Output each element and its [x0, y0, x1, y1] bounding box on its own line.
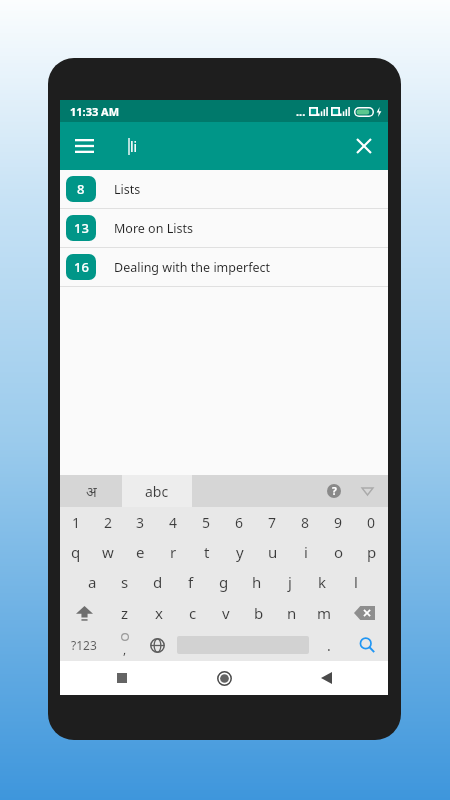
button[interactable]: l [339, 567, 372, 597]
button[interactable]: Shift [60, 597, 108, 629]
button[interactable]: Help [318, 475, 350, 507]
staticText: 11:33 AM [70, 104, 120, 119]
button[interactable]: 9 [322, 507, 355, 537]
staticText: 7 [268, 513, 277, 532]
staticText: k [318, 572, 327, 592]
button[interactable]: b [242, 597, 275, 629]
staticText: . [327, 636, 331, 655]
button[interactable]: t [190, 537, 223, 567]
button[interactable]: k [306, 567, 339, 597]
staticText: 3 [136, 513, 145, 532]
button[interactable]: Home [194, 661, 254, 695]
button[interactable]: q [60, 537, 92, 567]
button[interactable]: . [312, 629, 345, 661]
button[interactable]: Change language [141, 629, 174, 661]
button[interactable]: 5 [190, 507, 223, 537]
staticText: 9 [334, 513, 343, 532]
button[interactable]: x [142, 597, 176, 629]
button[interactable]: 0 [355, 507, 388, 537]
button[interactable]: v [209, 597, 242, 629]
staticText: li [130, 137, 138, 156]
staticText: s [121, 572, 129, 592]
button[interactable]: अ [60, 475, 122, 507]
button[interactable]: z [108, 597, 142, 629]
button[interactable]: 13 [60, 209, 388, 248]
staticText: z [121, 603, 129, 623]
button[interactable]: d [141, 567, 174, 597]
staticText: l [354, 572, 358, 592]
button[interactable]: w [92, 537, 124, 567]
button[interactable]: i [289, 537, 322, 567]
button[interactable]: 7 [256, 507, 289, 537]
staticText: 8 [301, 513, 310, 532]
button[interactable]: o [322, 537, 355, 567]
staticText: Dealing with the imperfect [114, 259, 271, 276]
button[interactable]: j [273, 567, 306, 597]
button[interactable]: Hide keyboard [350, 475, 384, 507]
button[interactable]: Menu [60, 122, 108, 170]
button[interactable]: g [207, 567, 240, 597]
button[interactable]: c [176, 597, 209, 629]
button[interactable]: 6 [223, 507, 256, 537]
button[interactable]: Backspace [341, 597, 388, 629]
staticText: ? [332, 484, 337, 498]
button[interactable]: 1 [60, 507, 92, 537]
button[interactable]: 4 [157, 507, 190, 537]
staticText: 2 [104, 513, 113, 532]
staticText: b [254, 603, 264, 623]
button[interactable]: e [124, 537, 157, 567]
staticText: g [219, 572, 229, 592]
staticText: c [189, 603, 197, 623]
staticText: w [102, 542, 114, 562]
button[interactable]: f [174, 567, 207, 597]
button[interactable]: Back [296, 661, 356, 695]
button[interactable]: 8 [289, 507, 322, 537]
button[interactable]: h [240, 567, 273, 597]
button[interactable]: Emoji and comma [108, 629, 141, 661]
staticText: i [304, 542, 308, 562]
button[interactable]: Search [345, 629, 388, 661]
button[interactable]: r [157, 537, 190, 567]
staticText: p [367, 542, 377, 562]
staticText: ?123 [71, 637, 97, 653]
button[interactable]: y [223, 537, 256, 567]
staticText: 5 [202, 513, 211, 532]
staticText: v [222, 603, 230, 623]
staticText: 1 [72, 513, 81, 532]
button[interactable]: Recent apps [92, 661, 152, 695]
staticText: o [334, 542, 344, 562]
button[interactable]: ?123 [60, 629, 108, 661]
button[interactable]: a [76, 567, 108, 597]
staticText: j [288, 572, 292, 592]
button[interactable]: m [308, 597, 341, 629]
staticText: More on Lists [114, 220, 193, 237]
staticText: u [268, 542, 278, 562]
button[interactable]: u [256, 537, 289, 567]
button[interactable]: s [108, 567, 141, 597]
staticText: y [236, 542, 244, 562]
staticText: n [287, 603, 297, 623]
staticText: t [204, 542, 210, 562]
button[interactable]: 2 [92, 507, 124, 537]
staticText: abc [145, 482, 169, 501]
staticText: 16 [74, 258, 89, 276]
staticText: 13 [74, 219, 89, 237]
staticText: 4 [169, 513, 178, 532]
button[interactable]: n [275, 597, 308, 629]
button[interactable]: Close search [340, 122, 388, 170]
staticText: e [136, 542, 145, 562]
staticText: Lists [114, 181, 141, 198]
button[interactable]: p [355, 537, 388, 567]
button[interactable]: 3 [124, 507, 157, 537]
staticText: 8 [77, 180, 85, 198]
button[interactable]: 8 [60, 170, 388, 209]
button[interactable]: abc [122, 475, 192, 507]
staticText: a [88, 572, 97, 592]
staticText: f [188, 572, 194, 592]
staticText: h [252, 572, 262, 592]
staticText: q [71, 542, 81, 562]
button[interactable]: 16 [60, 248, 388, 287]
staticText: 0 [367, 513, 376, 532]
staticText: , [123, 641, 127, 657]
